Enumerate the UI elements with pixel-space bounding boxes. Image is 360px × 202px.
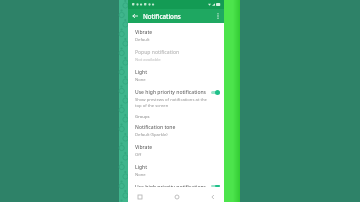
staticText: Vibrate (135, 144, 153, 151)
staticText: Not available (135, 57, 161, 63)
button[interactable]: Use high priority notifications (128, 181, 224, 190)
staticText: Default (Sparkle) (135, 132, 168, 138)
button[interactable]: More options (213, 11, 223, 21)
staticText: Show previews of notifications at the to… (135, 97, 208, 108)
button[interactable]: Recents (134, 191, 145, 202)
staticText: Vibrate (135, 29, 153, 36)
button[interactable]: Vibrate (128, 26, 224, 46)
button[interactable]: Light (128, 161, 224, 181)
staticText: Use high priority notifications (135, 184, 207, 187)
button[interactable]: Back (207, 191, 218, 202)
button[interactable]: Vibrate (128, 141, 224, 161)
button[interactable]: Toggle high priority notifications (211, 185, 220, 187)
staticText: Light (135, 164, 148, 171)
staticText: Notifications (143, 12, 181, 20)
staticText: None (135, 77, 146, 83)
button[interactable]: Back (130, 11, 140, 21)
staticText: None (135, 172, 146, 178)
staticText: Notification tone (135, 124, 176, 131)
button[interactable]: Home (171, 191, 182, 202)
button[interactable]: Popup notification (128, 46, 224, 66)
button[interactable]: Use high priority notifications (128, 86, 224, 111)
staticText: Groups (135, 114, 150, 120)
staticText: Use high priority notifications (135, 89, 207, 96)
button[interactable]: Light (128, 66, 224, 86)
staticText: Popup notification (135, 49, 180, 56)
button[interactable]: Notification tone (128, 121, 224, 141)
staticText: Light (135, 69, 148, 76)
button[interactable]: Toggle high priority notifications (211, 90, 220, 95)
staticText: Default (135, 37, 150, 43)
staticText: Off (135, 152, 142, 158)
